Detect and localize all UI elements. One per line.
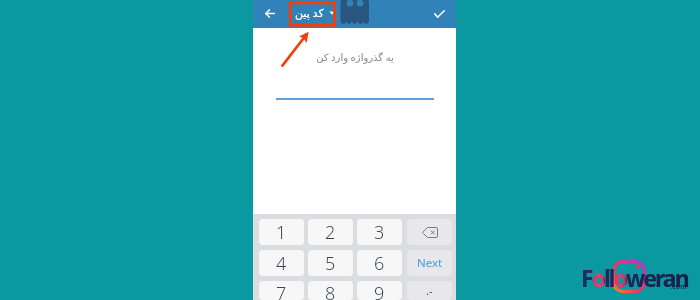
button[interactable]: Done: [427, 0, 451, 28]
other: Annotation: [0, 0, 700, 300]
button[interactable]: 8: [308, 281, 353, 300]
button[interactable]: .-: [407, 281, 452, 300]
staticText: کد پین: [295, 5, 324, 20]
button[interactable]: Next: [407, 250, 452, 276]
button[interactable]: Back: [258, 0, 282, 27]
staticText: 3: [374, 220, 385, 245]
staticText: 1: [276, 220, 287, 245]
staticText: 5: [325, 251, 336, 276]
staticText: Followeran: [581, 262, 688, 293]
staticText: Next: [417, 255, 443, 271]
staticText: یه گذرواژه وارد کن: [276, 50, 434, 64]
button[interactable]: کد پین: [295, 0, 335, 24]
button[interactable]: 7: [259, 281, 304, 300]
button[interactable]: 5: [308, 250, 353, 276]
button[interactable]: 9: [357, 281, 402, 300]
button[interactable]: 1: [259, 219, 304, 245]
button[interactable]: Backspace: [407, 219, 452, 245]
button[interactable]: 2: [308, 219, 353, 245]
button[interactable]: 6: [357, 250, 402, 276]
staticText: 6: [374, 251, 385, 276]
button[interactable]: 4: [259, 250, 304, 276]
staticText: 8: [325, 281, 336, 300]
button[interactable]: 3: [357, 219, 402, 245]
staticText: .-: [426, 283, 433, 298]
staticText: 9: [374, 281, 385, 300]
staticText: .com: [670, 282, 687, 292]
staticText: 4: [276, 251, 287, 276]
staticText: 2: [325, 220, 336, 245]
staticText: 7: [276, 281, 287, 300]
